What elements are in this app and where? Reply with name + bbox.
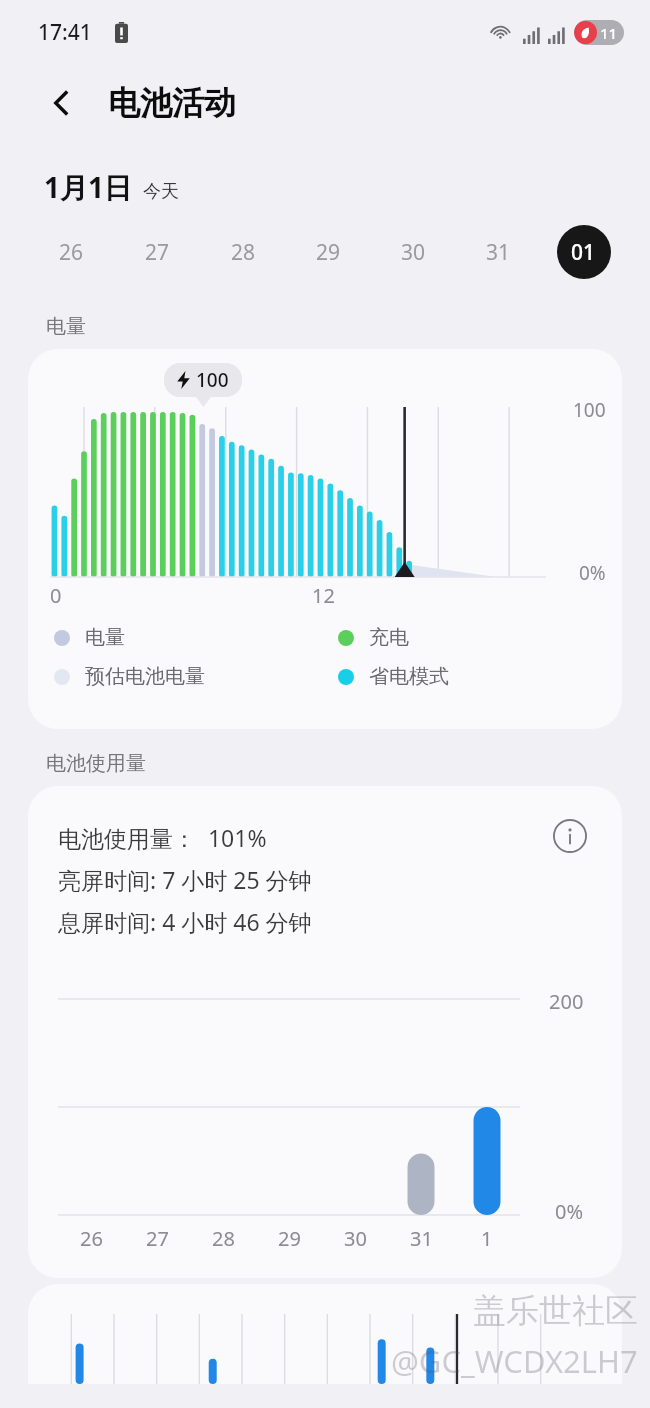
staticText: 0% bbox=[555, 1198, 584, 1225]
staticText: 12 bbox=[312, 582, 335, 609]
staticText: 电量 bbox=[85, 625, 125, 650]
staticText: 电池使用量： 101% bbox=[58, 822, 267, 853]
staticText: 盖乐世社区 bbox=[473, 1290, 638, 1332]
staticText: 100 bbox=[573, 397, 606, 423]
staticText: 11 bbox=[600, 23, 618, 43]
staticText: 亮屏时间: 7 小时 25 分钟 bbox=[58, 864, 312, 895]
staticText: 28 bbox=[212, 1225, 235, 1252]
staticText: 29 bbox=[316, 238, 341, 267]
staticText: @GC_WCDX2LH7 bbox=[391, 1340, 638, 1382]
staticText: 充电 bbox=[369, 625, 409, 650]
button[interactable] bbox=[28, 1284, 622, 1384]
staticText: 29 bbox=[278, 1225, 301, 1252]
button[interactable]: 30 bbox=[371, 220, 456, 284]
button[interactable]: 26 bbox=[28, 220, 114, 284]
staticText: 息屏时间: 4 小时 46 分钟 bbox=[58, 906, 312, 937]
staticText: 0% bbox=[579, 560, 606, 586]
staticText: 今天 bbox=[143, 180, 179, 203]
staticText: 预估电池电量 bbox=[85, 664, 205, 689]
staticText: 26 bbox=[80, 1225, 103, 1252]
button[interactable]: 31 bbox=[456, 220, 541, 284]
staticText: 100 bbox=[196, 367, 229, 393]
staticText: 电池活动 bbox=[108, 83, 236, 123]
staticText: 200 bbox=[549, 988, 584, 1015]
button[interactable]: 100 bbox=[28, 349, 622, 729]
button[interactable]: Back bbox=[38, 79, 86, 127]
staticText: 28 bbox=[231, 238, 256, 267]
staticText: 电量 bbox=[46, 314, 86, 339]
staticText: 31 bbox=[410, 1225, 433, 1252]
staticText: 26 bbox=[59, 238, 84, 267]
button[interactable]: 29 bbox=[286, 220, 371, 284]
staticText: 电池使用量 bbox=[46, 751, 146, 776]
staticText: 省电模式 bbox=[369, 664, 449, 689]
button[interactable]: 01 bbox=[541, 220, 626, 284]
button[interactable]: 28 bbox=[200, 220, 286, 284]
staticText: 1 bbox=[481, 1225, 493, 1252]
button[interactable]: 电池使用量： 101% bbox=[28, 786, 622, 1278]
button[interactable]: Info bbox=[548, 814, 592, 858]
staticText: 30 bbox=[344, 1225, 367, 1252]
staticText: 0 bbox=[50, 582, 62, 609]
staticText: 27 bbox=[146, 1225, 169, 1252]
staticText: 31 bbox=[486, 238, 511, 267]
staticText: 1月1日 bbox=[44, 168, 133, 206]
button[interactable]: 27 bbox=[114, 220, 200, 284]
staticText: 27 bbox=[145, 238, 170, 267]
staticText: 30 bbox=[401, 238, 426, 267]
staticText: 01 bbox=[571, 238, 596, 267]
staticText: 17:41 bbox=[38, 18, 92, 47]
